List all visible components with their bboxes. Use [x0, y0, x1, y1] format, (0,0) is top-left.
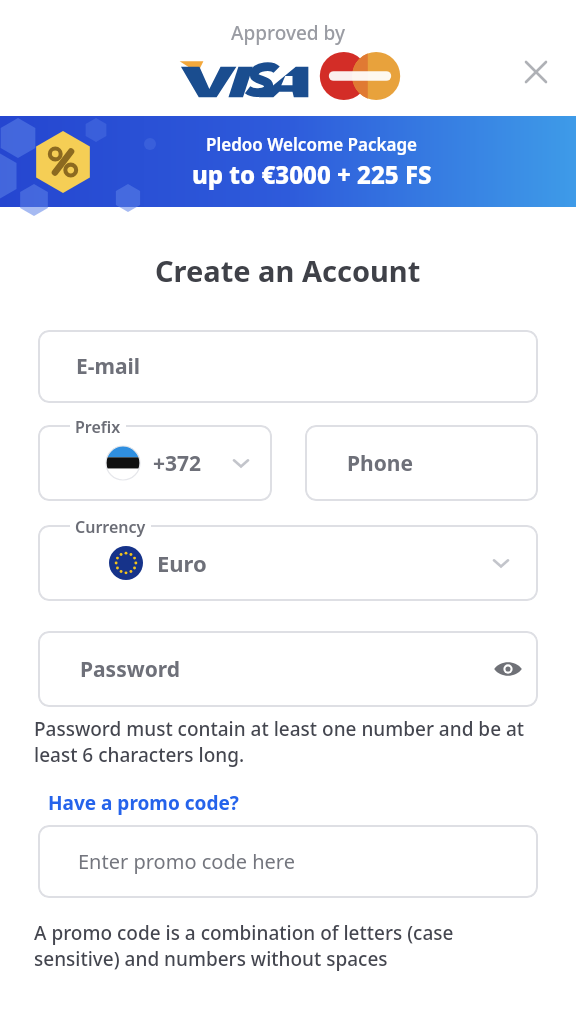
button[interactable]: Enter promo code here: [38, 825, 538, 898]
staticText: A promo code is a combination of letters…: [34, 920, 542, 972]
button[interactable]: Have a promo code?: [48, 790, 239, 816]
staticText: up to €3000 + 225 FS: [192, 158, 432, 191]
staticText: Euro: [157, 548, 207, 578]
button[interactable]: Close: [514, 50, 558, 94]
staticText: Create an Account: [155, 251, 421, 290]
button[interactable]: Password: [38, 631, 538, 707]
button[interactable]: +372: [38, 425, 272, 501]
staticText: Password must contain at least one numbe…: [34, 716, 542, 768]
staticText: Prefix: [75, 416, 121, 438]
button[interactable]: E-mail: [38, 330, 538, 403]
staticText: E-mail: [76, 352, 141, 381]
staticText: Enter promo code here: [78, 848, 295, 875]
staticText: Currency: [75, 516, 146, 538]
button[interactable]: Show password: [486, 647, 530, 691]
staticText: Password: [80, 655, 181, 684]
button[interactable]: Pledoo Welcome Package: [0, 116, 576, 207]
staticText: Approved by: [231, 20, 345, 46]
staticText: Have a promo code?: [48, 790, 239, 816]
button[interactable]: Euro: [38, 525, 538, 601]
staticText: Phone: [347, 449, 414, 478]
staticText: +372: [153, 449, 202, 478]
button[interactable]: Phone: [305, 425, 538, 501]
staticText: Pledoo Welcome Package: [206, 133, 418, 156]
